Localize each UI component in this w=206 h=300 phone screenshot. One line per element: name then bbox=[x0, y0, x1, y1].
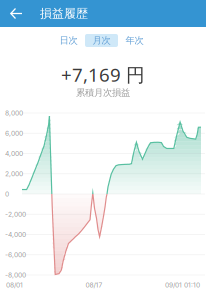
button[interactable]: Back bbox=[4, 1, 28, 25]
button[interactable]: 年次 bbox=[118, 34, 151, 47]
staticText: 08/17 bbox=[85, 281, 102, 289]
staticText: -2,000 bbox=[5, 210, 26, 218]
staticText: -8,000 bbox=[5, 271, 26, 279]
staticText: -6,000 bbox=[5, 251, 26, 259]
staticText: 6,000 bbox=[5, 129, 23, 137]
staticText: -4,000 bbox=[5, 230, 26, 239]
staticText: 2,000 bbox=[5, 170, 23, 178]
staticText: 09/01 01:10 bbox=[165, 281, 200, 289]
staticText: 年次 bbox=[125, 35, 143, 46]
button[interactable]: 日次 bbox=[52, 34, 85, 47]
staticText: 日次 bbox=[59, 35, 77, 46]
staticText: +7,169 円 bbox=[61, 62, 145, 87]
staticText: 8,000 bbox=[5, 109, 23, 117]
staticText: 月次 bbox=[92, 35, 110, 46]
staticText: 4,000 bbox=[5, 149, 23, 158]
staticText: 08/01 bbox=[6, 281, 23, 289]
button[interactable]: 月次 bbox=[85, 34, 118, 47]
staticText: 損益履歴 bbox=[40, 6, 88, 21]
staticText: 累積月次損益 bbox=[76, 87, 130, 98]
staticText: 0 bbox=[5, 190, 9, 198]
